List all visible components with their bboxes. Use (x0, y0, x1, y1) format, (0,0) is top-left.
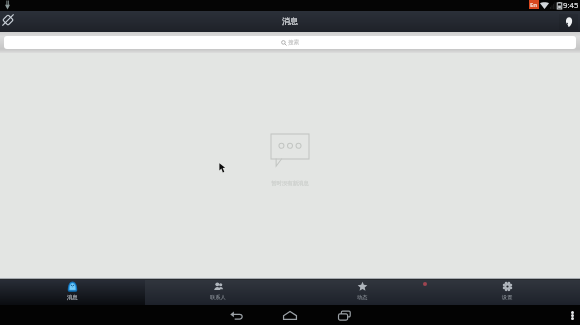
button[interactable]: Back (212, 305, 260, 325)
button[interactable]: Profile (0, 11, 18, 32)
staticText: 9:45 (563, 0, 579, 11)
staticText: En (530, 1, 538, 9)
staticText: 搜索 (288, 39, 300, 46)
button[interactable]: Notifications (559, 14, 578, 30)
button[interactable]: More options (564, 305, 580, 325)
staticText: 设置 (502, 294, 513, 301)
button[interactable]: Recent apps (320, 305, 368, 325)
staticText: 联系人 (210, 294, 226, 301)
staticText: 暂时没有新消息 (271, 180, 309, 187)
button[interactable]: Home (266, 305, 314, 325)
button[interactable]: 消息 (0, 277, 145, 305)
button[interactable]: 动态 (290, 277, 435, 305)
button[interactable]: 搜索 (4, 36, 576, 49)
button[interactable]: 设置 (435, 277, 580, 305)
staticText: 动态 (357, 294, 368, 301)
staticText: 消息 (282, 16, 298, 26)
button[interactable]: 联系人 (145, 277, 290, 305)
staticText: 消息 (67, 294, 78, 301)
